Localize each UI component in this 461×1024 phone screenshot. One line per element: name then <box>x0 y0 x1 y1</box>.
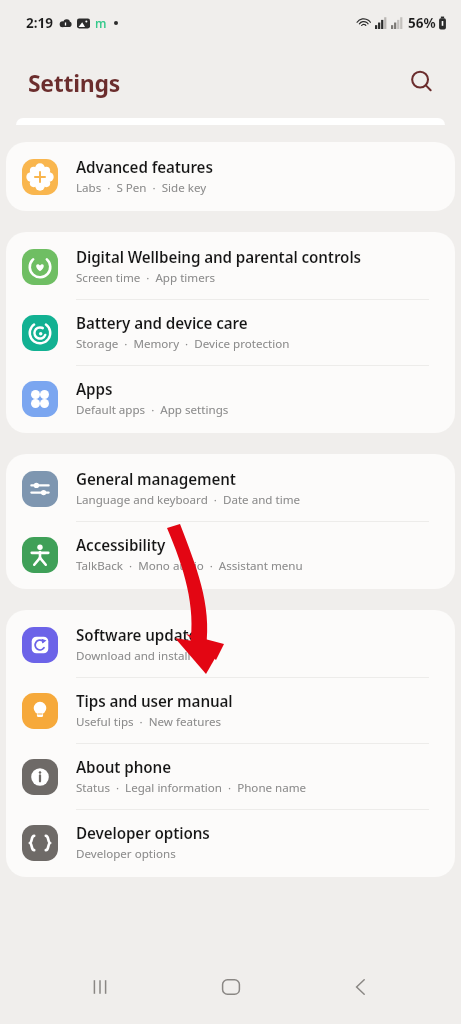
staticText: Labs · S Pen · Side key <box>76 180 207 196</box>
staticText: 2:19 <box>26 14 53 32</box>
staticText: Software update <box>76 625 198 646</box>
staticText: Useful tips · New features <box>76 714 222 730</box>
staticText: Tips and user manual <box>76 691 233 712</box>
staticText: m <box>95 15 107 31</box>
staticText: General management <box>76 469 236 490</box>
button[interactable]: Search <box>401 61 443 103</box>
button[interactable]: Advanced features <box>6 144 455 209</box>
staticText: Battery and device care <box>76 313 248 334</box>
staticText: About phone <box>76 757 171 778</box>
staticText: TalkBack · Mono audio · Assistant menu <box>76 558 303 574</box>
staticText: Settings <box>28 67 120 98</box>
button[interactable]: Home <box>207 963 255 1011</box>
button[interactable]: Battery and device care <box>6 300 455 365</box>
button[interactable]: About phone <box>6 744 455 809</box>
button[interactable]: Recent apps <box>78 965 122 1009</box>
button[interactable]: Tips and user manual <box>6 678 455 743</box>
button[interactable]: Apps <box>6 366 455 431</box>
staticText: Advanced features <box>76 157 213 178</box>
staticText: 56% <box>408 14 436 32</box>
button[interactable]: Digital Wellbeing and parental controls <box>6 234 455 299</box>
staticText: Language and keyboard · Date and time <box>76 492 301 508</box>
button[interactable]: General management <box>6 456 455 521</box>
staticText: Screen time · App timers <box>76 270 216 286</box>
staticText: Status · Legal information · Phone name <box>76 780 307 796</box>
staticText: Accessibility <box>76 535 166 556</box>
staticText: Developer options <box>76 846 176 862</box>
button[interactable]: Back <box>339 965 383 1009</box>
button[interactable]: Software update <box>6 612 455 677</box>
staticText: Default apps · App settings <box>76 402 229 418</box>
staticText: Apps <box>76 379 113 400</box>
staticText: Digital Wellbeing and parental controls <box>76 247 361 268</box>
button[interactable]: Accessibility <box>6 522 455 587</box>
staticText: Storage · Memory · Device protection <box>76 336 290 352</box>
staticText: Download and install <box>76 648 191 664</box>
button[interactable]: Developer options <box>6 810 455 875</box>
staticText: Developer options <box>76 823 210 844</box>
